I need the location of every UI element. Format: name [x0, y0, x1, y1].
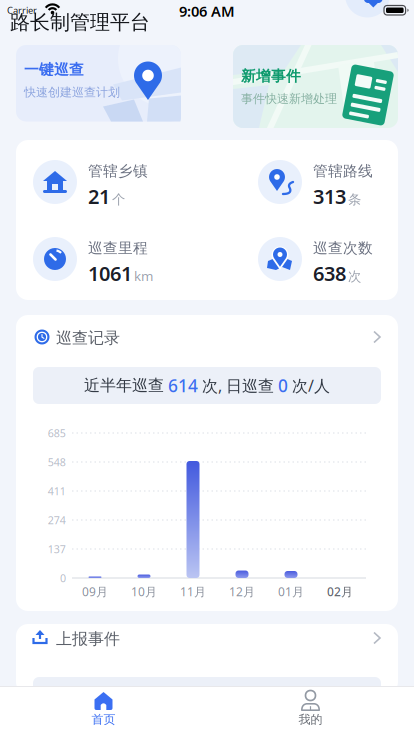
staticText: 0 [60, 571, 66, 585]
staticText: 个 [112, 191, 125, 208]
staticText: 巡查次数 [313, 239, 373, 257]
staticText: 条 [348, 191, 361, 208]
staticText: 12月 [229, 583, 255, 599]
staticText: 事件快速新增处理 [241, 91, 337, 106]
staticText: 10月 [131, 583, 157, 599]
staticText: 次, 日巡查 [202, 375, 274, 396]
staticText: 21 [88, 183, 110, 210]
staticText: 路长制管理平台 [10, 10, 150, 35]
staticText: 11月 [180, 583, 206, 599]
staticText: 上报事件 [56, 629, 120, 649]
staticText: 274 [48, 513, 66, 527]
staticText: 巡查里程 [88, 239, 148, 257]
staticText: 137 [48, 542, 66, 556]
staticText: 管辖乡镇 [88, 162, 148, 180]
staticText: 548 [48, 455, 66, 469]
staticText: km [134, 267, 153, 285]
staticText: 411 [48, 484, 66, 498]
staticText: 近半年巡查 [84, 376, 164, 395]
staticText: 我的 [298, 712, 322, 727]
staticText: 首页 [91, 712, 115, 727]
button[interactable]: 我的 [207, 686, 414, 736]
staticText: 管辖路线 [313, 162, 373, 180]
button[interactable]: 一键巡查 [16, 45, 181, 128]
button[interactable]: 上报事件 [16, 624, 398, 694]
staticText: 0 [278, 374, 288, 397]
staticText: 614 [168, 374, 198, 397]
staticText: 1061 [88, 260, 132, 287]
staticText: 02月 [327, 583, 353, 599]
staticText: 巡查记录 [56, 328, 120, 348]
staticText: 新增事件 [241, 67, 301, 85]
staticText: 685 [48, 426, 66, 440]
button[interactable]: 新增事件 [233, 45, 398, 128]
staticText: Carrier [7, 4, 37, 16]
staticText: 09月 [82, 583, 108, 599]
staticText: 01月 [278, 583, 304, 599]
staticText: 快速创建巡查计划 [24, 85, 120, 100]
staticText: 一键巡查 [24, 60, 84, 78]
button[interactable]: 首页 [0, 686, 207, 736]
staticText: 9:06 AM [179, 1, 235, 21]
button[interactable]: 巡查记录 [16, 315, 398, 611]
staticText: 638 [313, 260, 346, 287]
staticText: 次/人 [292, 375, 330, 396]
staticText: 313 [313, 183, 346, 210]
staticText: 次 [348, 268, 361, 285]
